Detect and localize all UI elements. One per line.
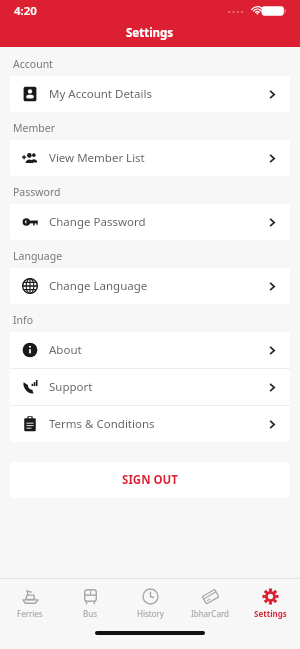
button[interactable]: SIGN OUT	[10, 462, 290, 498]
button[interactable]: IbharCard	[180, 579, 240, 627]
staticText: Terms & Conditions	[49, 416, 155, 432]
staticText: View Member List	[49, 150, 145, 166]
staticText: Settings	[126, 25, 174, 41]
staticText: Change Language	[49, 278, 148, 294]
button[interactable]: History	[120, 579, 180, 627]
button[interactable]: About	[10, 332, 290, 368]
staticText: Password	[13, 185, 61, 199]
button[interactable]: Support	[10, 369, 290, 405]
button[interactable]: Bus	[60, 579, 120, 627]
button[interactable]: Settings	[240, 579, 300, 627]
button[interactable]: Change Password	[10, 204, 290, 240]
button[interactable]: My Account Details	[10, 76, 290, 112]
button[interactable]: Change Language	[10, 268, 290, 304]
staticText: Language	[13, 249, 63, 263]
staticText: Info	[13, 313, 34, 327]
staticText: History	[137, 608, 164, 619]
staticText: IbharCard	[191, 608, 229, 619]
button[interactable]: Terms & Conditions	[10, 406, 290, 442]
staticText: Change Password	[49, 214, 146, 230]
staticText: My Account Details	[49, 86, 152, 102]
staticText: Account	[13, 57, 53, 71]
staticText: SIGN OUT	[122, 472, 178, 488]
staticText: Support	[49, 379, 93, 395]
staticText: Bus	[83, 608, 97, 619]
staticText: 4:20	[14, 3, 37, 19]
staticText: Settings	[254, 608, 287, 619]
button[interactable]: Ferries	[0, 579, 60, 627]
staticText: Ferries	[17, 608, 43, 619]
button[interactable]: View Member List	[10, 140, 290, 176]
staticText: About	[49, 342, 82, 358]
staticText: Member	[13, 121, 55, 135]
